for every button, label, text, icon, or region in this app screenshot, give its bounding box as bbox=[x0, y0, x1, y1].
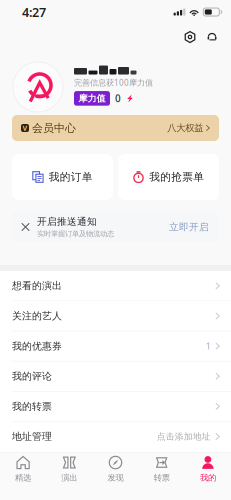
button[interactable]: 我的抢票单 bbox=[118, 154, 219, 200]
button[interactable]: 我的评论 bbox=[0, 361, 231, 392]
staticText: 会员中心 bbox=[32, 121, 76, 135]
button[interactable]: 我的转票 bbox=[0, 392, 231, 422]
staticText: 精选 bbox=[15, 472, 31, 483]
staticText: 发现 bbox=[107, 472, 123, 483]
button[interactable]: 发现 bbox=[92, 452, 139, 500]
button[interactable]: 想看的演出 bbox=[0, 271, 231, 301]
staticText: 我的评论 bbox=[12, 370, 52, 382]
button[interactable]: 转票 bbox=[139, 452, 185, 500]
button[interactable]: 头像 bbox=[13, 62, 63, 112]
button[interactable]: 关闭 bbox=[18, 219, 33, 235]
button[interactable]: 演出 bbox=[46, 452, 92, 500]
staticText: 我的优惠券 bbox=[12, 340, 62, 352]
staticText: 我的转票 bbox=[12, 400, 52, 413]
button[interactable]: V bbox=[12, 115, 219, 141]
button[interactable]: 客服 bbox=[201, 25, 223, 49]
staticText: 关注的艺人 bbox=[12, 310, 62, 322]
staticText: 立即开启 bbox=[169, 221, 209, 233]
staticText: 实时掌握订单及物流动态 bbox=[37, 229, 114, 238]
button[interactable]: 立即开启 bbox=[166, 217, 212, 237]
button[interactable]: 我的优惠券 bbox=[0, 331, 231, 361]
button[interactable]: 地址管理 bbox=[0, 422, 231, 452]
staticText: 我的订单 bbox=[49, 170, 93, 184]
staticText: 摩力值 bbox=[78, 93, 105, 104]
button[interactable]: 精选 bbox=[0, 452, 46, 500]
staticText: 我的 bbox=[200, 472, 216, 483]
staticText: 八大权益 bbox=[167, 122, 203, 134]
staticText: 1 bbox=[206, 340, 211, 352]
staticText: 开启推送通知 bbox=[37, 216, 97, 228]
staticText: V bbox=[22, 123, 27, 133]
staticText: 转票 bbox=[154, 472, 170, 483]
staticText: 0 bbox=[115, 92, 121, 105]
button[interactable]: 我的订单 bbox=[12, 154, 113, 200]
staticText: 地址管理 bbox=[12, 430, 52, 443]
staticText: 演出 bbox=[61, 472, 77, 483]
button[interactable]: 关注的艺人 bbox=[0, 301, 231, 331]
staticText: 4:27 bbox=[22, 3, 46, 21]
staticText: 点击添加地址 bbox=[157, 431, 211, 442]
staticText: 我的抢票单 bbox=[149, 170, 204, 184]
button[interactable]: 设置 bbox=[179, 25, 201, 49]
staticText: 想看的演出 bbox=[12, 280, 62, 292]
button[interactable]: 我的 bbox=[185, 452, 231, 500]
staticText: 完善信息获100摩力值 bbox=[74, 77, 153, 88]
